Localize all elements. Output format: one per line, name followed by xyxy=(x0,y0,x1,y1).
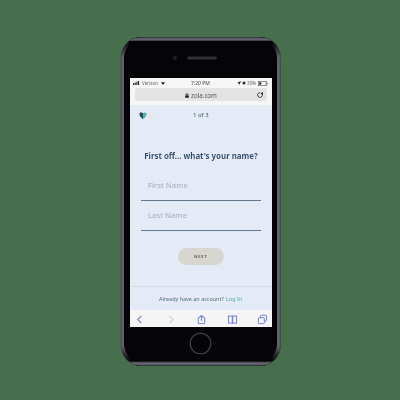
staticText: 1 of 3 xyxy=(193,111,209,119)
staticText: NEXT xyxy=(194,254,208,260)
button[interactable]: Last Name xyxy=(141,210,261,231)
button[interactable]: zola.com xyxy=(135,88,267,101)
staticText: First Name xyxy=(148,180,188,191)
staticText: Already have an account? xyxy=(159,295,226,302)
staticText: 7:20 PM xyxy=(191,80,210,87)
staticText: zola.com xyxy=(191,91,217,99)
button[interactable]: Share xyxy=(193,311,209,327)
button[interactable]: NEXT xyxy=(178,248,224,265)
button[interactable]: Back xyxy=(131,311,147,327)
button[interactable]: Log In xyxy=(226,295,243,302)
staticText: Last Name xyxy=(148,210,188,221)
staticText: 30% xyxy=(247,80,257,86)
staticText: First off... what's your name? xyxy=(133,151,269,162)
button[interactable]: Tabs xyxy=(254,311,270,327)
button[interactable]: First Name xyxy=(141,180,261,201)
button[interactable]: Bookmarks xyxy=(224,311,240,327)
button[interactable]: Forward xyxy=(163,311,179,327)
staticText: Verizon xyxy=(142,80,159,86)
